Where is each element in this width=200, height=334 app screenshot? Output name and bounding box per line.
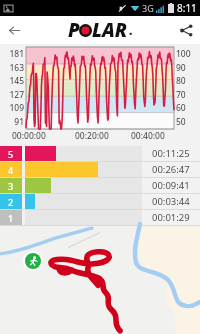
staticText: 00:26:47 [152, 163, 190, 176]
staticText: 00:11:25 [152, 147, 190, 160]
staticText: 4 [8, 164, 14, 176]
staticText: 145 [9, 75, 24, 87]
staticText: 91 [14, 116, 24, 128]
staticText: 00:01:29 [152, 211, 190, 224]
button[interactable]: 2 [0, 194, 200, 209]
staticText: 00:00:00 [12, 130, 46, 142]
staticText: 100 [176, 48, 191, 60]
staticText: LAR [92, 17, 128, 43]
staticText: 60 [176, 102, 186, 114]
staticText: 70 [176, 89, 186, 101]
button[interactable]: Route map [0, 226, 200, 334]
staticText: 00:09:41 [152, 179, 190, 192]
staticText: 00:40:00 [131, 130, 165, 142]
staticText: 3 [8, 180, 14, 192]
staticText: 181 [9, 48, 24, 60]
staticText: 80 [176, 75, 186, 87]
button[interactable]: Start point [25, 253, 41, 269]
staticText: 1 [8, 212, 14, 224]
button[interactable]: 4 [0, 162, 200, 177]
staticText: 163 [9, 62, 24, 74]
button[interactable]: 1 [0, 210, 200, 225]
staticText: 8:11 [177, 1, 197, 15]
staticText: 2 [8, 196, 14, 208]
staticText: 5 [8, 148, 14, 160]
staticText: . [129, 22, 133, 38]
staticText: 00:03:44 [152, 195, 190, 208]
staticText: 127 [9, 89, 24, 101]
staticText: 50 [176, 116, 186, 128]
staticText: P [68, 17, 80, 43]
button[interactable]: Share [172, 16, 200, 44]
staticText: 00:20:00 [75, 130, 109, 142]
staticText: 3G [142, 2, 154, 14]
button[interactable]: 3 [0, 178, 200, 193]
button[interactable]: Back [0, 16, 28, 44]
staticText: 90 [176, 62, 186, 74]
staticText: 109 [9, 102, 24, 114]
button[interactable]: 5 [0, 146, 200, 161]
